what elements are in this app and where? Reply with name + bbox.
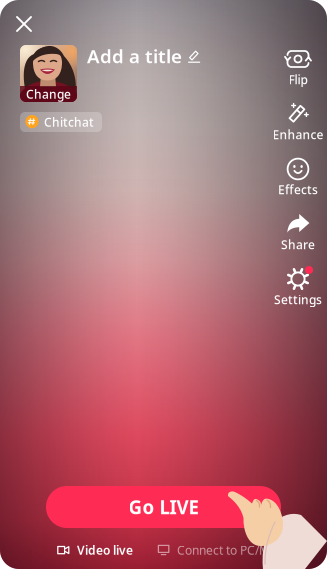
staticText: Enhance [272,126,323,142]
button[interactable]: Go LIVE [46,486,281,528]
staticText: Change [26,86,71,102]
button[interactable]: Enhance [270,99,326,142]
staticText: Effects [278,181,318,197]
staticText: Flip [288,71,307,87]
staticText: Chitchat [44,114,94,130]
button[interactable]: Change cover photo [20,45,77,102]
button[interactable]: Connect to PC/Mac [157,539,283,561]
staticText: Share [281,236,315,252]
staticText: Add a title [87,44,182,68]
button[interactable]: Flip [270,44,326,87]
button[interactable]: Close [7,7,41,41]
staticText: Settings [274,291,322,307]
staticText: Go LIVE [128,495,198,519]
button[interactable]: Effects [270,154,326,197]
staticText: Connect to PC/Mac [177,542,283,558]
button[interactable]: Video live [56,539,133,561]
staticText: Video live [77,542,133,558]
button[interactable]: Add a title [87,45,202,67]
button[interactable]: Settings [270,264,326,307]
button[interactable]: Share [270,209,326,252]
button[interactable]: Chitchat [20,112,102,132]
